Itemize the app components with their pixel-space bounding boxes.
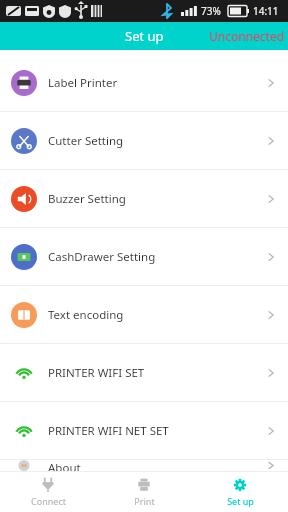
staticText: Unconnected	[209, 28, 285, 44]
staticText: Set up	[125, 27, 164, 45]
button[interactable]: Label Printer	[0, 54, 288, 111]
staticText: CashDrawer Setting	[48, 249, 156, 265]
button[interactable]: Text encoding	[0, 286, 288, 343]
staticText: 14:11	[253, 4, 279, 18]
button[interactable]: About	[0, 460, 288, 471]
staticText: Label Printer	[48, 75, 118, 91]
staticText: 73%	[201, 4, 221, 18]
button[interactable]: Set up	[192, 472, 288, 512]
staticText: Set up	[227, 495, 254, 507]
button[interactable]: Connect	[0, 472, 96, 512]
staticText: Print	[134, 495, 155, 507]
staticText: PRINTER WIFI SET	[48, 365, 145, 381]
staticText: Buzzer Setting	[48, 191, 126, 207]
staticText: PRINTER WIFI NET SET	[48, 423, 169, 439]
button[interactable]: Buzzer Setting	[0, 170, 288, 227]
button[interactable]: PRINTER WIFI SET	[0, 344, 288, 401]
button[interactable]: Cutter Setting	[0, 112, 288, 169]
button[interactable]: PRINTER WIFI NET SET	[0, 402, 288, 459]
staticText: Connect	[31, 495, 66, 507]
staticText: Text encoding	[48, 307, 124, 323]
button[interactable]: Print	[96, 472, 192, 512]
button[interactable]: CashDrawer Setting	[0, 228, 288, 285]
staticText: Cutter Setting	[48, 133, 124, 149]
staticText: About	[48, 460, 81, 471]
